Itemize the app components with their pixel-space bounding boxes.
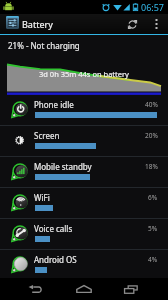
button[interactable]: Back (18, 278, 52, 300)
button[interactable]: Phone idle (0, 95, 168, 126)
staticText: 4% (148, 255, 158, 264)
staticText: Screen (34, 130, 60, 141)
button[interactable]: Battery (0, 14, 53, 34)
button[interactable]: Screen (0, 126, 168, 157)
staticText: 20% (145, 131, 158, 140)
staticText: 5% (148, 224, 158, 233)
staticText: 6% (148, 193, 158, 202)
button[interactable]: Recent apps (114, 278, 148, 300)
button[interactable]: Mobile standby (0, 157, 168, 188)
button[interactable]: Home (67, 278, 101, 300)
staticText: 18% (145, 162, 158, 171)
button[interactable]: Voice calls (0, 219, 168, 250)
staticText: 40% (145, 100, 158, 109)
staticText: Battery (22, 18, 53, 30)
staticText: 3d 0h 35m 44s on battery (39, 69, 129, 79)
staticText: Android OS (34, 254, 77, 265)
staticText: WiFi (34, 192, 50, 203)
button[interactable]: More options (148, 14, 164, 34)
staticText: 21% - Not charging (8, 40, 80, 51)
button[interactable]: Refresh (124, 14, 141, 34)
staticText: Voice calls (34, 223, 73, 234)
staticText: Phone idle (34, 99, 74, 110)
button[interactable]: WiFi (0, 188, 168, 219)
button[interactable]: Android OS (0, 250, 168, 281)
staticText: Mobile standby (34, 161, 92, 172)
staticText: 06:57 (141, 1, 165, 13)
